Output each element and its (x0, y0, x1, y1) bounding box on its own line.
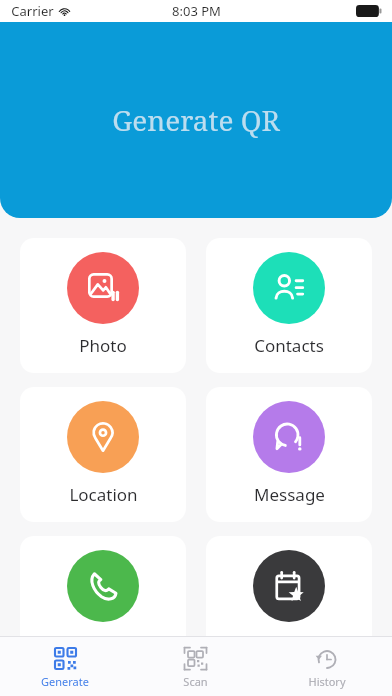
staticText: History (308, 674, 346, 689)
staticText: Carrier (11, 2, 54, 20)
button[interactable]: History (261, 640, 392, 693)
button[interactable]: Scan (130, 640, 261, 693)
button[interactable]: Photo (20, 238, 186, 373)
staticText: Generate (41, 674, 89, 689)
button[interactable]: Phone (20, 536, 186, 671)
staticText: Photo (79, 334, 127, 357)
button[interactable]: Generate (0, 640, 130, 693)
staticText: Event (267, 632, 312, 655)
staticText: Phone (77, 632, 129, 655)
staticText: Generate QR (112, 101, 280, 139)
staticText: Contacts (254, 334, 324, 357)
staticText: 8:03 PM (172, 2, 221, 20)
button[interactable]: Message (206, 387, 372, 522)
staticText: Scan (183, 674, 208, 689)
staticText: Message (254, 483, 325, 506)
button[interactable]: Event (206, 536, 372, 671)
button[interactable]: Location (20, 387, 186, 522)
button[interactable]: Contacts (206, 238, 372, 373)
staticText: Location (69, 483, 138, 506)
